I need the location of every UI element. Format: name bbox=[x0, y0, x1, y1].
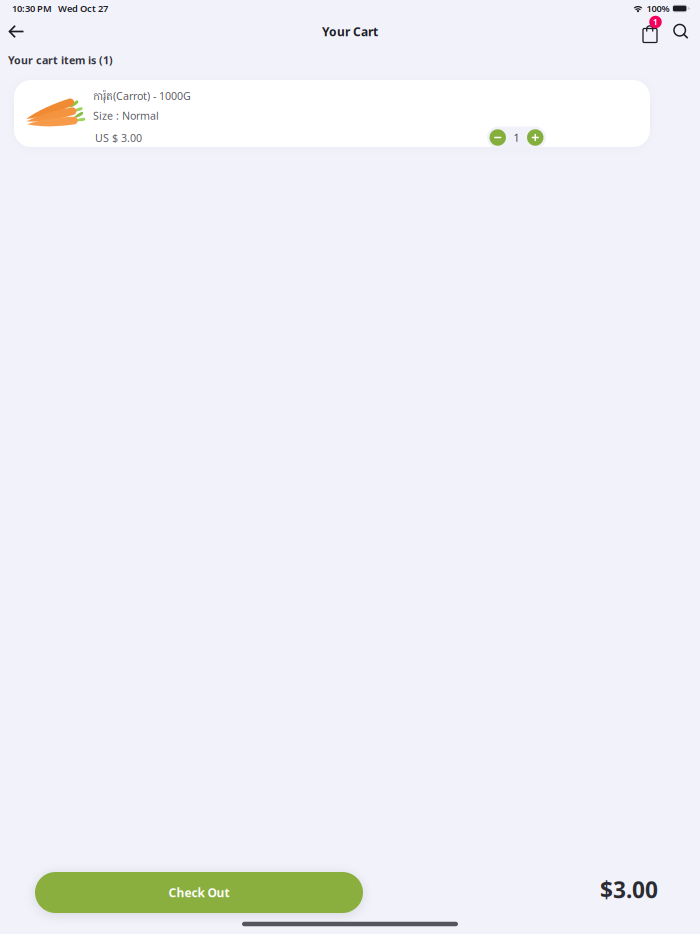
button[interactable]: Search bbox=[667, 17, 695, 45]
staticText: 10:30 PM bbox=[12, 2, 52, 15]
staticText: Your cart item is (1) bbox=[8, 53, 113, 67]
button[interactable]: Back bbox=[1, 17, 31, 45]
staticText: Size : Normal bbox=[93, 108, 159, 123]
staticText: Check Out bbox=[168, 884, 229, 900]
staticText: ការ៉ុត(Carrot) - 1000G bbox=[93, 89, 191, 105]
staticText: $3.00 bbox=[600, 874, 658, 904]
staticText: Wed Oct 27 bbox=[58, 2, 108, 15]
staticText: 1 bbox=[513, 130, 519, 145]
staticText: Your Cart bbox=[322, 23, 378, 39]
staticText: 100% bbox=[646, 2, 669, 15]
button[interactable]: Check Out bbox=[35, 872, 363, 913]
staticText: 1 bbox=[653, 17, 658, 27]
button[interactable]: Decrease quantity bbox=[489, 129, 506, 146]
button[interactable]: Increase quantity bbox=[526, 129, 544, 146]
button[interactable]: Cart bbox=[639, 17, 667, 45]
staticText: US $ 3.00 bbox=[95, 131, 142, 145]
